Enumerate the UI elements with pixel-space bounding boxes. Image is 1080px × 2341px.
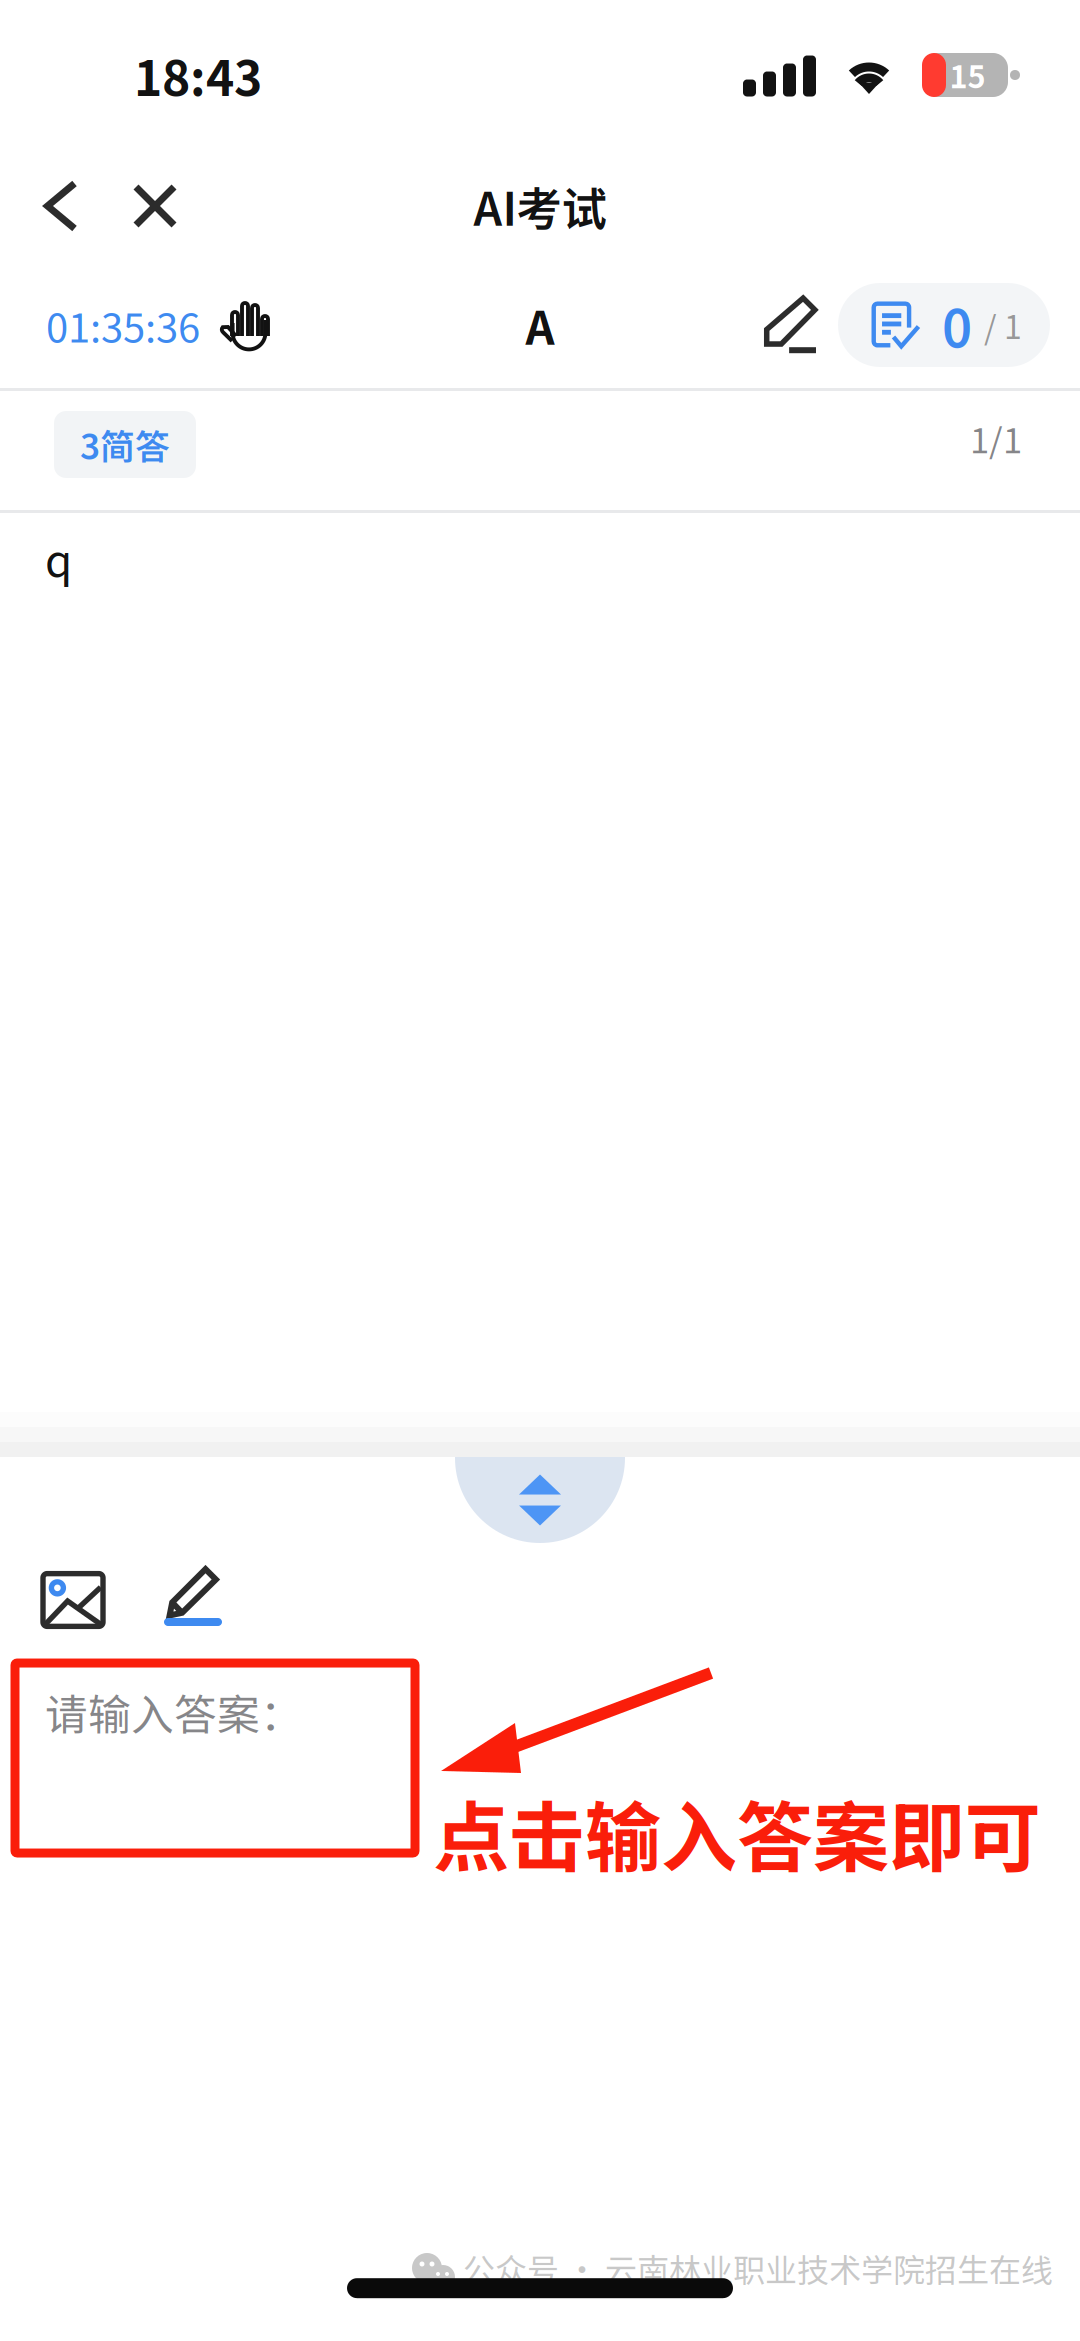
button[interactable]: Annotate (742, 279, 834, 371)
staticText: 0 (942, 287, 972, 363)
staticText: 请输入答案： (45, 1681, 303, 1743)
staticText: AI考试 (473, 173, 606, 239)
staticText: 01:35:36 (46, 296, 200, 354)
staticText: 3简答 (80, 419, 170, 470)
button[interactable]: Answer field (15, 1663, 415, 1853)
staticText: A (525, 292, 554, 358)
button[interactable]: Pause exam (0, 293, 274, 357)
staticText: 公众号 · 云南林业职业技术学院招生在线 (463, 2245, 1053, 2291)
staticText: q (45, 526, 72, 590)
button[interactable]: Back (14, 162, 108, 250)
button[interactable]: Answer sheet (838, 283, 1050, 367)
button[interactable]: Insert image (34, 1561, 112, 1639)
staticText: 1/1 (970, 413, 1022, 463)
staticText: 点击输入答案即可 (433, 1777, 1041, 1887)
button[interactable]: Handwrite answer (154, 1561, 232, 1639)
button[interactable]: Resize answer area (455, 1457, 625, 1543)
button[interactable]: Font size (494, 279, 586, 371)
staticText: / 1 (984, 302, 1022, 348)
staticText: 18:43 (134, 40, 262, 110)
button[interactable]: Close (108, 162, 202, 250)
staticText: 15 (949, 53, 985, 97)
